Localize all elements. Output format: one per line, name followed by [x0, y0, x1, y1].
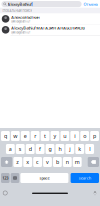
button[interactable]: q	[1, 131, 10, 141]
staticText: t	[44, 132, 46, 140]
button[interactable]: k	[75, 144, 84, 154]
staticText: o	[83, 132, 86, 140]
staticText: e	[24, 132, 27, 140]
button[interactable]: b	[53, 157, 62, 167]
button[interactable]: o	[80, 131, 89, 141]
button[interactable]: p	[90, 131, 99, 141]
staticText: 123	[2, 175, 8, 181]
staticText: c	[36, 158, 39, 166]
button[interactable]: w	[11, 131, 20, 141]
button[interactable]: AlexeyBathiuf МАГАЗИН АНАБОЛИКОВ	[0, 24, 100, 35]
button[interactable]: y	[50, 131, 59, 141]
staticText: m	[75, 158, 80, 166]
button[interactable]: h	[55, 144, 64, 154]
button[interactable]: Delete	[88, 157, 99, 167]
staticText: s	[19, 145, 22, 153]
button[interactable]: g	[46, 144, 54, 154]
staticText: h	[58, 145, 61, 153]
button[interactable]: j	[65, 144, 74, 154]
button[interactable]: c	[33, 157, 42, 167]
staticText: Алексей Бяткин	[11, 14, 39, 20]
button[interactable]: space	[20, 173, 68, 183]
staticText: q	[4, 132, 7, 140]
button[interactable]: l	[85, 144, 94, 154]
button[interactable]: s	[16, 144, 25, 154]
staticText: y	[53, 132, 56, 140]
staticText: AlexeyBathiuf МАГАЗИН АНАБОЛИКОВ	[11, 25, 85, 31]
button[interactable]: Shift	[1, 157, 12, 167]
staticText: search	[79, 175, 91, 181]
staticText: space	[39, 175, 49, 181]
staticText: f	[39, 145, 41, 153]
staticText: k	[78, 145, 81, 153]
staticText: b	[56, 158, 59, 166]
staticText: Отмена	[83, 1, 97, 7]
staticText: n	[66, 158, 69, 166]
staticText: u	[63, 132, 66, 140]
button[interactable]: Emoji	[1, 189, 9, 197]
staticText: l	[89, 145, 90, 153]
staticText: z	[16, 158, 19, 166]
button[interactable]: Отмена	[82, 1, 99, 7]
button[interactable]: x	[23, 157, 32, 167]
button[interactable]: Алексей Бяткин	[0, 13, 100, 24]
button[interactable]: f	[36, 144, 44, 154]
button[interactable]: AlexeyBathiuf	[1, 1, 82, 7]
button[interactable]: t	[41, 131, 49, 141]
button[interactable]: Dictation	[91, 189, 99, 197]
staticText: j	[69, 145, 70, 153]
button[interactable]: search	[71, 173, 99, 183]
button[interactable]: e	[21, 131, 30, 141]
staticText: i	[74, 132, 75, 140]
staticText: g	[48, 145, 51, 153]
button[interactable]: m	[73, 157, 82, 167]
staticText: ГЛОБАЛЬНЫЙ ПОИСК	[2, 9, 32, 13]
staticText: x	[26, 158, 29, 166]
staticText: v	[46, 158, 49, 166]
button[interactable]: i	[70, 131, 79, 141]
button[interactable]: v	[43, 157, 52, 167]
staticText: AlexeyBathiuf	[8, 1, 32, 7]
staticText: w	[13, 132, 17, 140]
staticText: @AlexeyBathiuf	[11, 20, 30, 23]
staticText: p	[93, 132, 96, 140]
staticText: r	[34, 132, 36, 140]
button[interactable]: u	[60, 131, 69, 141]
button[interactable]: a	[6, 144, 15, 154]
button[interactable]: Switch keyboard	[11, 173, 19, 183]
button[interactable]: d	[26, 144, 35, 154]
staticText: d	[29, 145, 32, 153]
button[interactable]: r	[31, 131, 39, 141]
button[interactable]: z	[13, 157, 22, 167]
staticText: @AlexeyBathiuf	[11, 31, 30, 34]
staticText: a	[9, 145, 12, 153]
button[interactable]: n	[63, 157, 72, 167]
button[interactable]: 123	[1, 173, 10, 183]
